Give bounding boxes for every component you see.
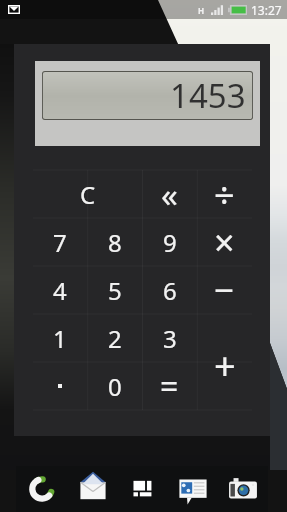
button[interactable]: −: [197, 266, 252, 314]
button[interactable]: 9: [142, 218, 197, 266]
button[interactable]: Apps: [118, 466, 168, 512]
button[interactable]: ×: [197, 218, 252, 266]
button[interactable]: «: [142, 170, 197, 218]
button[interactable]: 5: [87, 266, 142, 314]
button[interactable]: [33, 362, 87, 410]
button[interactable]: ÷: [197, 170, 252, 218]
button[interactable]: Phone: [16, 466, 67, 512]
staticText: 8: [108, 226, 122, 259]
staticText: ÷: [214, 170, 235, 218]
staticText: 4: [53, 274, 67, 307]
button[interactable]: +: [197, 320, 252, 410]
button[interactable]: 3: [142, 314, 197, 362]
button[interactable]: 6: [142, 266, 197, 314]
button[interactable]: =: [142, 362, 197, 410]
staticText: −: [214, 266, 235, 314]
staticText: 1453: [170, 73, 246, 118]
button[interactable]: 8: [87, 218, 142, 266]
button[interactable]: 1: [33, 314, 87, 362]
button[interactable]: Mail: [67, 466, 118, 512]
button[interactable]: 4: [33, 266, 87, 314]
button[interactable]: 0: [87, 362, 142, 410]
staticText: 6: [163, 274, 177, 307]
staticText: 0: [108, 370, 122, 403]
button[interactable]: 7: [33, 218, 87, 266]
staticText: ×: [214, 218, 235, 266]
button[interactable]: Camera: [218, 466, 268, 512]
staticText: 13:27: [251, 2, 282, 18]
staticText: +: [214, 339, 236, 391]
staticText: H: [198, 5, 205, 16]
staticText: C: [80, 178, 96, 211]
staticText: 7: [53, 226, 67, 259]
staticText: =: [160, 364, 179, 408]
button[interactable]: C: [33, 170, 142, 218]
button[interactable]: 2: [87, 314, 142, 362]
staticText: 1: [53, 322, 67, 355]
staticText: «: [161, 172, 178, 217]
button[interactable]: Messages: [168, 466, 218, 512]
staticText: 3: [163, 322, 177, 355]
staticText: 5: [108, 274, 122, 307]
staticText: 9: [163, 226, 177, 259]
staticText: 2: [108, 322, 122, 355]
